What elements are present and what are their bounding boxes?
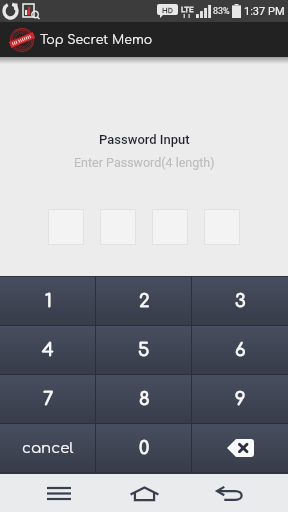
- staticText: 6: [235, 340, 246, 360]
- staticText: 83%: [213, 6, 230, 17]
- button[interactable]: 3: [192, 277, 288, 325]
- button[interactable]: 7: [0, 375, 96, 423]
- button[interactable]: 9: [192, 375, 288, 423]
- staticText: Password Input: [99, 132, 190, 147]
- button[interactable]: Back: [200, 474, 258, 512]
- button[interactable]: cancel: [0, 424, 96, 472]
- button[interactable]: 2: [96, 277, 192, 325]
- staticText: Enter Password(4 length): [74, 155, 215, 170]
- button[interactable]: 5: [96, 326, 192, 374]
- staticText: 4: [42, 340, 54, 360]
- staticText: 7: [43, 389, 54, 409]
- button[interactable]: Home: [115, 474, 173, 512]
- button[interactable]: 0: [96, 424, 192, 472]
- button[interactable]: Backspace: [192, 424, 288, 472]
- button[interactable]: 1: [0, 277, 96, 325]
- button[interactable]: 4: [0, 326, 96, 374]
- staticText: LTE: [181, 5, 194, 14]
- staticText: 8: [139, 389, 150, 409]
- staticText: 9: [235, 389, 246, 409]
- staticText: 1:37 PM: [244, 5, 285, 18]
- other: Backspace: [227, 439, 254, 457]
- staticText: HD: [162, 6, 173, 15]
- staticText: 1: [45, 291, 52, 311]
- staticText: 3: [235, 291, 246, 311]
- button[interactable]: Menu: [30, 474, 88, 512]
- staticText: Top Secret Memo: [40, 33, 153, 47]
- button[interactable]: 6: [192, 326, 288, 374]
- button[interactable]: 8: [96, 375, 192, 423]
- staticText: 0: [139, 438, 150, 458]
- staticText: 5: [138, 340, 150, 360]
- staticText: 2: [139, 291, 150, 311]
- staticText: cancel: [22, 440, 74, 457]
